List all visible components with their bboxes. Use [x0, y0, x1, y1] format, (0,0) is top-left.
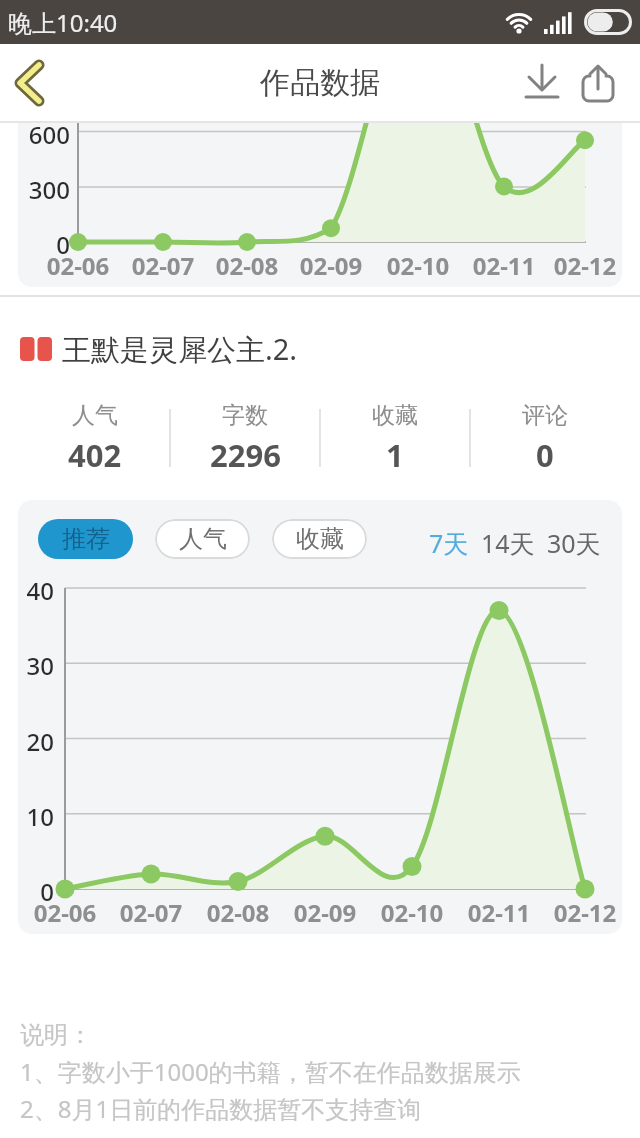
staticText: 说明：: [20, 1020, 92, 1050]
staticText: 收藏: [372, 401, 418, 430]
staticText: 02-11: [469, 249, 539, 282]
staticText: 1: [386, 434, 404, 476]
staticText: 300: [28, 173, 70, 206]
staticText: 02-08: [203, 896, 273, 929]
staticText: 2、8月1日前的作品数据暂不支持查询: [20, 1092, 422, 1125]
staticText: 评论: [522, 401, 568, 430]
staticText: 10: [18, 800, 54, 833]
button[interactable]: 推荐: [38, 519, 133, 559]
staticText: 1、字数小于1000的书籍，暂不在作品数据展示: [20, 1055, 521, 1088]
button[interactable]: [574, 59, 622, 107]
staticText: 推荐: [62, 524, 110, 554]
staticText: 收藏: [296, 524, 344, 554]
staticText: 02-10: [383, 249, 453, 282]
staticText: 402: [68, 434, 122, 476]
staticText: 王默是灵犀公主.2.: [62, 329, 298, 369]
staticText: 人气: [179, 524, 227, 554]
staticText: 02-09: [290, 896, 360, 929]
staticText: 02-09: [296, 249, 366, 282]
staticText: 02-06: [30, 896, 100, 929]
button[interactable]: 收藏: [272, 519, 367, 559]
staticText: 30: [18, 649, 54, 682]
staticText: 2296: [210, 434, 281, 476]
staticText: 作品数据: [260, 64, 380, 102]
staticText: 02-10: [377, 896, 447, 929]
staticText: 人气: [72, 401, 118, 430]
staticText: 02-06: [43, 249, 113, 282]
staticText: 02-12: [550, 249, 620, 282]
button[interactable]: [0, 44, 60, 121]
staticText: 字数: [222, 401, 268, 430]
button[interactable]: 14天: [481, 526, 535, 560]
staticText: 600: [28, 123, 70, 151]
staticText: 40: [18, 574, 54, 607]
button[interactable]: [518, 59, 566, 107]
button[interactable]: 人气: [155, 519, 250, 559]
button[interactable]: 7天: [429, 526, 469, 560]
staticText: 晚上10:40: [8, 6, 118, 39]
staticText: 0: [536, 434, 554, 476]
staticText: 02-07: [128, 249, 198, 282]
staticText: 02-08: [212, 249, 282, 282]
button[interactable]: 30天: [547, 526, 601, 560]
staticText: 02-11: [464, 896, 534, 929]
staticText: 02-07: [116, 896, 186, 929]
staticText: 20: [18, 725, 54, 758]
staticText: 02-12: [550, 896, 620, 929]
staticText: 0: [28, 228, 70, 261]
staticText: 0: [18, 875, 54, 908]
